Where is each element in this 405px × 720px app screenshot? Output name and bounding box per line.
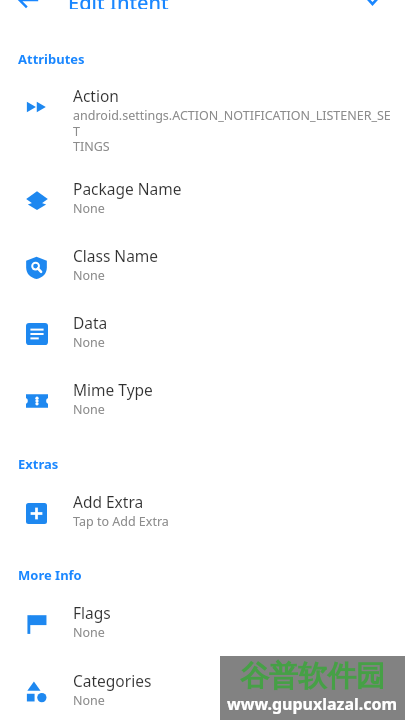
staticText: None xyxy=(73,624,105,641)
staticText: Class Name xyxy=(73,245,159,266)
staticText: Data xyxy=(73,312,108,333)
staticText: Categories xyxy=(73,670,152,691)
staticText: None xyxy=(73,401,105,418)
button[interactable]: Categories xyxy=(0,670,405,714)
button[interactable]: Data xyxy=(0,312,405,356)
button[interactable]: Package Name xyxy=(0,178,405,222)
button[interactable]: Mime Type xyxy=(0,379,405,423)
staticText: Add Extra xyxy=(73,491,144,512)
staticText: Attributes xyxy=(18,50,85,68)
staticText: Mime Type xyxy=(73,379,153,400)
staticText: Action xyxy=(73,85,119,106)
button[interactable]: Back xyxy=(8,0,48,10)
staticText: Extras xyxy=(18,455,59,473)
staticText: Edit Intent xyxy=(68,0,169,9)
staticText: None xyxy=(73,692,105,709)
staticText: None xyxy=(73,334,105,351)
staticText: Flags xyxy=(73,602,111,623)
button[interactable]: Add Extra xyxy=(0,491,405,535)
button[interactable]: Flags xyxy=(0,602,405,646)
button[interactable]: Save xyxy=(355,0,395,8)
staticText: None xyxy=(73,200,105,217)
button[interactable]: Action xyxy=(0,85,405,154)
staticText: More Info xyxy=(18,566,82,584)
staticText: Tap to Add Extra xyxy=(73,513,169,530)
button[interactable]: Class Name xyxy=(0,245,405,289)
staticText: www.gupuxlazal.com xyxy=(227,693,398,715)
staticText: None xyxy=(73,267,105,284)
staticText: 谷普软件园 xyxy=(240,658,385,695)
staticText: android.settings.ACTION_NOTIFICATION_LIS… xyxy=(73,107,395,154)
staticText: Package Name xyxy=(73,178,182,199)
